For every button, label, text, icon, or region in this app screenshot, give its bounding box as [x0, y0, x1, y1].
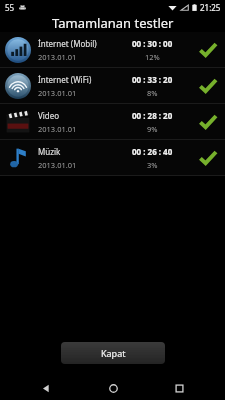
other: Completed	[195, 109, 221, 135]
button[interactable]: Kapat	[61, 342, 165, 364]
staticText: 00 : 33 : 20	[132, 74, 173, 85]
button[interactable]: Back	[26, 376, 66, 400]
button[interactable]: Home	[93, 376, 133, 400]
staticText: 8%	[147, 88, 158, 98]
staticText: 00 : 26 : 40	[132, 146, 173, 157]
staticText: 3%	[147, 160, 158, 170]
staticText: 00 : 30 : 00	[132, 38, 173, 49]
other: Completed	[195, 73, 221, 99]
staticText: 2013.01.01	[38, 52, 77, 62]
button[interactable]: Recent apps	[159, 376, 199, 400]
staticText: Video	[38, 110, 60, 121]
staticText: 12%	[145, 52, 160, 62]
other: Completed	[195, 145, 221, 171]
staticText: 2013.01.01	[38, 160, 77, 170]
staticText: 55	[5, 2, 15, 13]
staticText: 9%	[147, 124, 158, 134]
staticText: 00 : 28 : 20	[132, 110, 173, 121]
staticText: İnternet (WiFi)	[38, 74, 92, 85]
staticText: Tamamlanan testler	[52, 14, 174, 32]
button[interactable]: Müzik	[0, 140, 225, 175]
button[interactable]: İnternet (Mobil)	[0, 32, 225, 67]
staticText: Müzik	[38, 146, 61, 157]
button[interactable]: Video	[0, 104, 225, 139]
staticText: Kapat	[101, 347, 126, 359]
staticText: İnternet (Mobil)	[38, 38, 97, 49]
staticText: 21:25	[200, 2, 221, 13]
button[interactable]: İnternet (WiFi)	[0, 68, 225, 103]
staticText: 2013.01.01	[38, 88, 77, 98]
staticText: 2013.01.01	[38, 124, 77, 134]
other: Completed	[195, 37, 221, 63]
